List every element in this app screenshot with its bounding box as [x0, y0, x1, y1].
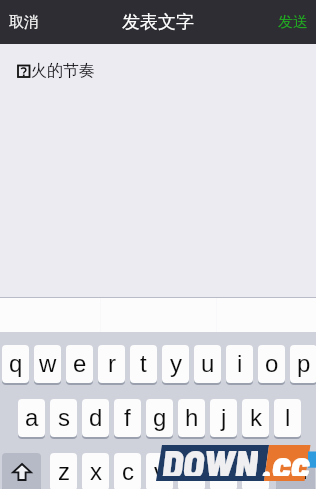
staticText: r: [108, 350, 116, 377]
staticText: c: [122, 458, 134, 485]
staticText: x: [90, 458, 102, 485]
button[interactable]: n: [210, 453, 237, 489]
button[interactable]: c: [114, 453, 141, 489]
staticText: z: [58, 458, 70, 485]
button[interactable]: Shift: [2, 453, 41, 489]
button[interactable]: q: [2, 345, 29, 383]
staticText: f: [124, 404, 131, 431]
button[interactable]: m: [242, 453, 269, 489]
button[interactable]: t: [130, 345, 157, 383]
staticText: a: [25, 404, 39, 431]
staticText: d: [89, 404, 103, 431]
staticText: g: [153, 404, 167, 431]
button[interactable]: o: [258, 345, 285, 383]
staticText: q: [9, 350, 23, 377]
button[interactable]: j: [210, 399, 237, 437]
button[interactable]: p: [290, 345, 316, 383]
staticText: v: [154, 458, 166, 485]
staticText: .cc: [262, 440, 310, 476]
button[interactable]: k: [242, 399, 269, 437]
button[interactable]: d: [82, 399, 109, 437]
button[interactable]: w: [34, 345, 61, 383]
staticText: w: [39, 350, 57, 377]
staticText: h: [185, 404, 199, 431]
button[interactable]: 取消: [9, 0, 39, 44]
staticText: DOWN: [162, 440, 258, 476]
button[interactable]: s: [50, 399, 77, 437]
staticText: y: [170, 350, 182, 377]
button[interactable]: a: [18, 399, 45, 437]
staticText: t: [140, 350, 147, 377]
button[interactable]: e: [66, 345, 93, 383]
staticText: m: [246, 458, 266, 485]
staticText: i: [237, 350, 243, 377]
staticText: u: [201, 350, 215, 377]
button[interactable]: x: [82, 453, 109, 489]
button[interactable]: f: [114, 399, 141, 437]
staticText: 火的节奏: [31, 61, 95, 81]
button[interactable]: i: [226, 345, 253, 383]
staticText: 发送: [278, 13, 308, 32]
staticText: l: [285, 404, 291, 431]
staticText: s: [58, 404, 70, 431]
staticText: 发表文字: [122, 11, 194, 34]
button[interactable]: l: [274, 399, 301, 437]
staticText: j: [221, 404, 227, 431]
staticText: e: [73, 350, 87, 377]
staticText: k: [250, 404, 262, 431]
button[interactable]: y: [162, 345, 189, 383]
button[interactable]: 发送: [278, 0, 308, 44]
button[interactable]: v: [146, 453, 173, 489]
button[interactable]: Backspace: [276, 453, 315, 489]
staticText: n: [217, 458, 231, 485]
button[interactable]: h: [178, 399, 205, 437]
staticText: o: [265, 350, 279, 377]
button[interactable]: g: [146, 399, 173, 437]
staticText: p: [297, 350, 311, 377]
button[interactable]: z: [50, 453, 77, 489]
button[interactable]: r: [98, 345, 125, 383]
button[interactable]: u: [194, 345, 221, 383]
staticText: 取消: [9, 13, 39, 32]
staticText: b: [185, 458, 199, 485]
button[interactable]: b: [178, 453, 205, 489]
